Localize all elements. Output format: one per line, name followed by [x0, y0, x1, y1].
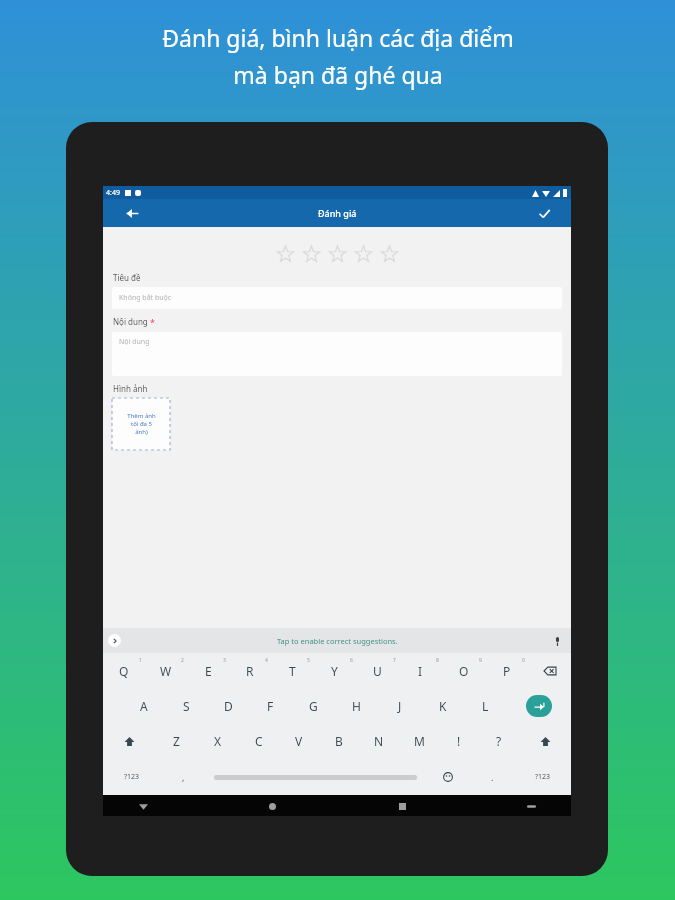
- staticText: W: [160, 663, 172, 679]
- button[interactable]: Q: [103, 653, 145, 688]
- button[interactable]: ?123: [514, 759, 571, 795]
- button[interactable]: L: [464, 688, 507, 723]
- button[interactable]: Z: [156, 723, 197, 759]
- staticText: ,: [182, 771, 185, 783]
- staticText: E: [205, 663, 212, 679]
- button[interactable]: Rate 3 stars: [324, 241, 350, 267]
- button[interactable]: Rate 5 stars: [376, 241, 402, 267]
- button[interactable]: I: [399, 653, 442, 688]
- button[interactable]: Save: [533, 202, 555, 224]
- staticText: Nội dung: [113, 316, 148, 327]
- button[interactable]: Emoji: [426, 759, 470, 795]
- button[interactable]: J: [378, 688, 421, 723]
- staticText: !: [457, 733, 461, 749]
- staticText: B: [335, 733, 343, 749]
- staticText: Đánh giá, bình luận các địa điểm: [162, 22, 514, 53]
- button[interactable]: Rate 4 stars: [350, 241, 376, 267]
- staticText: 6: [350, 657, 353, 664]
- staticText: ?123: [124, 772, 140, 782]
- button[interactable]: H: [335, 688, 378, 723]
- button[interactable]: K: [421, 688, 464, 723]
- staticText: .: [491, 771, 494, 783]
- staticText: 9: [479, 657, 482, 664]
- button[interactable]: B: [319, 723, 359, 759]
- button[interactable]: Tap to enable correct suggestions.: [277, 636, 398, 646]
- staticText: A: [140, 698, 148, 714]
- staticText: N: [374, 733, 384, 749]
- staticText: L: [482, 698, 489, 714]
- staticText: D: [224, 698, 233, 714]
- staticText: 7: [393, 657, 396, 664]
- button[interactable]: Home: [262, 796, 282, 816]
- button[interactable]: Space: [205, 759, 426, 795]
- button[interactable]: V: [279, 723, 319, 759]
- staticText: tối đa 5: [131, 420, 152, 428]
- button[interactable]: Shift: [103, 723, 156, 759]
- button[interactable]: D: [207, 688, 249, 723]
- button[interactable]: G: [292, 688, 335, 723]
- button[interactable]: N: [359, 723, 399, 759]
- staticText: H: [352, 698, 361, 714]
- staticText: O: [459, 663, 469, 679]
- button[interactable]: P: [485, 653, 528, 688]
- button[interactable]: Thêm ảnh: [112, 398, 170, 450]
- staticText: 1: [139, 657, 142, 664]
- button[interactable]: F: [249, 688, 292, 723]
- staticText: 0: [522, 657, 525, 664]
- staticText: Y: [331, 663, 338, 679]
- button[interactable]: Voice input: [550, 634, 564, 648]
- staticText: ảnh): [135, 428, 148, 436]
- button[interactable]: Rate 2 stars: [298, 241, 324, 267]
- button[interactable]: Backspace: [528, 653, 571, 688]
- staticText: Tiêu đề: [113, 272, 141, 283]
- button[interactable]: U: [356, 653, 399, 688]
- staticText: Q: [119, 663, 129, 679]
- button[interactable]: T: [271, 653, 313, 688]
- staticText: mà bạn đã ghé qua: [233, 59, 443, 90]
- button[interactable]: ?: [479, 723, 519, 759]
- button[interactable]: Hide keyboard: [521, 796, 541, 816]
- button[interactable]: C: [238, 723, 279, 759]
- staticText: K: [439, 698, 447, 714]
- button[interactable]: R: [229, 653, 271, 688]
- staticText: X: [214, 733, 222, 749]
- button[interactable]: Shift: [519, 723, 571, 759]
- staticText: T: [289, 663, 296, 679]
- button[interactable]: ,: [161, 759, 205, 795]
- button[interactable]: M: [399, 723, 439, 759]
- staticText: Nội dung: [119, 337, 150, 347]
- button[interactable]: S: [165, 688, 207, 723]
- button[interactable]: Back: [133, 796, 153, 816]
- button[interactable]: Rate 1 stars: [272, 241, 298, 267]
- staticText: 5: [307, 657, 310, 664]
- staticText: U: [373, 663, 382, 679]
- button[interactable]: E: [187, 653, 229, 688]
- button[interactable]: Recents: [392, 796, 412, 816]
- staticText: Hình ảnh: [113, 383, 148, 394]
- staticText: Đánh giá: [318, 207, 357, 219]
- button[interactable]: X: [197, 723, 238, 759]
- staticText: Thêm ảnh: [127, 412, 156, 420]
- staticText: M: [414, 733, 425, 749]
- button[interactable]: A: [123, 688, 165, 723]
- staticText: 3: [223, 657, 226, 664]
- button[interactable]: W: [145, 653, 187, 688]
- button[interactable]: Back: [121, 202, 143, 224]
- button[interactable]: !: [439, 723, 479, 759]
- staticText: 2: [181, 657, 184, 664]
- staticText: S: [183, 698, 190, 714]
- staticText: P: [503, 663, 511, 679]
- button[interactable]: Không bắt buộc: [112, 287, 562, 309]
- staticText: F: [267, 698, 274, 714]
- button[interactable]: ?123: [103, 759, 161, 795]
- staticText: I: [418, 663, 423, 679]
- staticText: G: [309, 698, 318, 714]
- button[interactable]: Enter: [507, 688, 571, 723]
- staticText: 8: [436, 657, 439, 664]
- staticText: V: [295, 733, 303, 749]
- button[interactable]: Y: [313, 653, 356, 688]
- button[interactable]: O: [442, 653, 485, 688]
- button[interactable]: Expand: [108, 634, 121, 647]
